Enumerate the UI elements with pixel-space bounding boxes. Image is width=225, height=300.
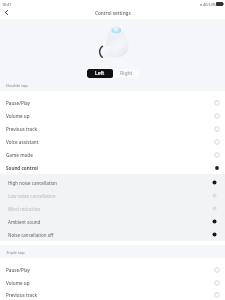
staticText: Volume up [6, 280, 30, 286]
staticText: Wind reduction [8, 206, 41, 212]
staticText: Voice assistant [6, 139, 39, 145]
staticText: Previous track [6, 126, 38, 132]
staticText: Pause/Play [6, 267, 31, 273]
staticText: Pause/Play [6, 100, 31, 106]
staticText: Ambient sound [8, 219, 41, 225]
staticText: Previous track [6, 292, 38, 298]
staticText: Volume up [6, 113, 30, 119]
staticText: Low noise cancellation [8, 193, 56, 199]
button[interactable]: Pause/Play [0, 96, 225, 109]
staticText: Left [95, 70, 105, 77]
staticText: Right [120, 70, 133, 77]
button[interactable]: Volume up [0, 109, 225, 122]
staticText: 4G 53% [203, 2, 216, 7]
button[interactable]: Previous track [0, 289, 225, 300]
staticText: Triple tap [6, 250, 25, 256]
button[interactable]: High noise cancellation [0, 176, 225, 189]
staticText: 10:41 [2, 2, 12, 7]
staticText: Game mode [6, 152, 33, 158]
button[interactable]: Noise cancellation off [0, 228, 225, 241]
button[interactable]: Volume up [0, 276, 225, 289]
button[interactable]: Sound control [0, 161, 225, 174]
button[interactable]: Wind reduction [0, 202, 225, 215]
button[interactable]: Ambient sound [0, 215, 225, 228]
button[interactable]: Left [87, 69, 113, 78]
button[interactable]: Voice assistant [0, 135, 225, 148]
staticText: High noise cancellation [8, 180, 58, 186]
button[interactable]: Game mode [0, 148, 225, 161]
button[interactable]: Previous track [0, 122, 225, 135]
button[interactable]: Back [0, 10, 12, 15]
button[interactable]: Pause/Play [0, 263, 225, 276]
button[interactable]: Right [113, 69, 139, 78]
staticText: Double tap [6, 83, 28, 89]
button[interactable]: Low noise cancellation [0, 189, 225, 202]
staticText: Sound control [6, 165, 38, 171]
staticText: Control settings [95, 10, 131, 16]
staticText: Noise cancellation off [8, 232, 54, 238]
